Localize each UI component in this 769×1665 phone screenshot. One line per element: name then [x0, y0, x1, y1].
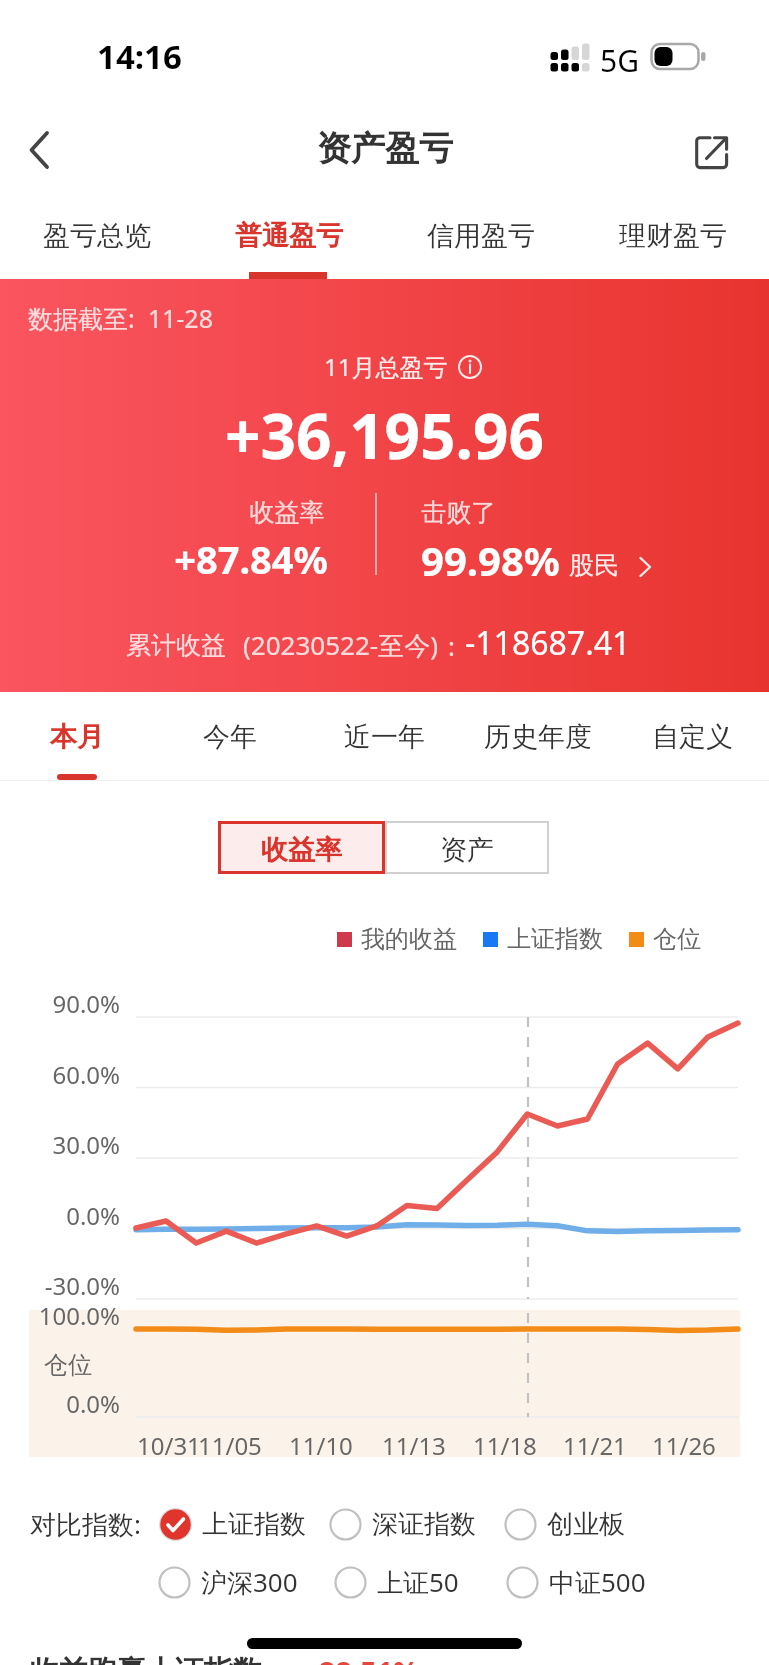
staticText: +36,195.96	[0, 393, 769, 477]
staticText: 11/26	[652, 1429, 716, 1462]
staticText: (20230522-至今)	[243, 627, 438, 663]
staticText: -118687.41	[465, 621, 631, 665]
staticText: 击败了	[421, 497, 496, 528]
staticText: 近一年	[344, 720, 425, 754]
staticText: 收益跑赢上证指数	[30, 1653, 262, 1665]
button[interactable]: 信用盈亏	[385, 193, 577, 279]
staticText: 14:16	[97, 34, 182, 79]
button[interactable]: 沪深300	[158, 1564, 298, 1600]
staticText: 累计收益	[126, 630, 226, 661]
staticText: 30.0%	[0, 1128, 120, 1161]
staticText: 5G	[600, 40, 639, 81]
button[interactable]: 普通盈亏	[193, 193, 385, 279]
button[interactable]: 中证500	[506, 1564, 646, 1600]
staticText: :	[448, 628, 455, 663]
button[interactable]: 历史年度	[461, 692, 615, 781]
staticText: 自定义	[652, 720, 733, 754]
staticText: 收益率	[207, 497, 367, 528]
staticText: 仓位	[44, 1350, 92, 1380]
staticText: 仓位	[653, 924, 701, 954]
button[interactable]: 创业板	[504, 1508, 625, 1541]
staticText: 0.0%	[0, 1199, 120, 1232]
staticText: 收益率	[261, 833, 342, 867]
staticText: 股民	[569, 550, 619, 581]
staticText: 理财盈亏	[619, 219, 727, 253]
staticText: 11/18	[473, 1429, 537, 1462]
button[interactable]: 近一年	[307, 692, 461, 781]
staticText: 11/05	[198, 1429, 262, 1462]
button[interactable]: Share	[677, 116, 749, 188]
staticText: 深证指数	[372, 1508, 476, 1541]
staticText: 11月总盈亏	[324, 350, 448, 383]
staticText: 盈亏总览	[43, 219, 151, 253]
button[interactable]: 上证指数	[159, 1508, 306, 1541]
staticText: +87.84%	[151, 533, 351, 585]
staticText: 资产	[440, 833, 494, 867]
button[interactable]: Back	[0, 116, 72, 188]
staticText: 11/21	[563, 1429, 627, 1462]
staticText: 创业板	[547, 1508, 625, 1541]
staticText: 中证500	[549, 1564, 646, 1600]
button[interactable]: 今年	[153, 692, 307, 781]
staticText: 沪深300	[201, 1564, 298, 1600]
button[interactable]: 理财盈亏	[577, 193, 769, 279]
staticText: 100.0%	[0, 1299, 120, 1332]
staticText: -30.0%	[0, 1269, 120, 1302]
button[interactable]: 盈亏总览	[0, 193, 193, 279]
button[interactable]: 资产	[385, 821, 549, 874]
staticText: 信用盈亏	[427, 219, 535, 253]
staticText: 普通盈亏	[235, 219, 343, 253]
staticText: 历史年度	[484, 720, 592, 754]
staticText: 上证指数	[507, 924, 603, 954]
button[interactable]: 上证50	[334, 1564, 459, 1600]
staticText: 资产盈亏	[317, 127, 453, 170]
staticText: 60.0%	[0, 1058, 120, 1091]
button[interactable]: 本月	[0, 692, 153, 781]
staticText: 10/31	[137, 1429, 201, 1462]
staticText: 今年	[203, 720, 257, 754]
staticText: 本月	[50, 720, 104, 754]
staticText: 0.0%	[0, 1387, 120, 1420]
button[interactable]: 深证指数	[329, 1508, 476, 1541]
staticText: 我的收益	[361, 924, 457, 954]
staticText: 11/13	[382, 1429, 446, 1462]
staticText: 上证50	[377, 1564, 459, 1600]
staticText: 11/10	[289, 1429, 353, 1462]
button[interactable]: 收益率	[218, 821, 385, 874]
staticText: +88.51%	[302, 1652, 420, 1665]
staticText: 90.0%	[0, 987, 120, 1020]
staticText: 对比指数:	[30, 1506, 141, 1542]
button[interactable]: 自定义	[615, 692, 769, 781]
staticText: 99.98%	[421, 533, 560, 587]
staticText: 数据截至: 11-28	[28, 301, 213, 335]
staticText: 上证指数	[202, 1508, 306, 1541]
